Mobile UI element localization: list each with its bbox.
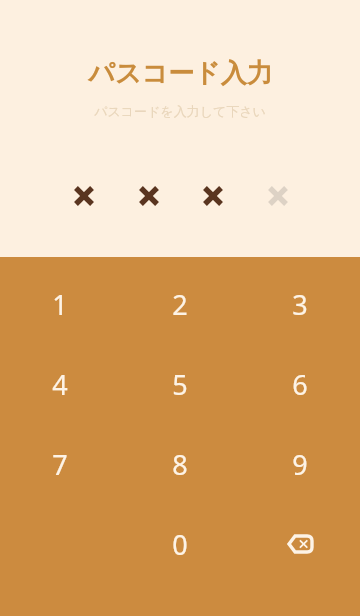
staticText: 4 [52,366,68,403]
button[interactable]: 2 [120,264,240,344]
button[interactable]: 6 [240,344,360,424]
staticText: パスコードを入力して下さい [94,103,266,119]
button[interactable]: 1 [0,264,120,344]
button[interactable]: 0 [120,504,240,584]
staticText: 5 [172,366,188,403]
staticText: 2 [172,286,188,323]
staticText: 0 [172,526,188,563]
staticText: 6 [292,366,308,403]
button[interactable]: 8 [120,424,240,504]
button[interactable]: 3 [240,264,360,344]
staticText: 7 [52,446,68,483]
staticText: 8 [172,446,188,483]
button[interactable]: Backspace [240,504,360,584]
button[interactable]: 7 [0,424,120,504]
button[interactable]: 5 [120,344,240,424]
button[interactable]: 4 [0,344,120,424]
staticText: 3 [292,286,308,323]
staticText: パスコード入力 [88,57,273,90]
staticText: 9 [292,446,308,483]
staticText: 1 [52,286,68,323]
button[interactable]: 9 [240,424,360,504]
